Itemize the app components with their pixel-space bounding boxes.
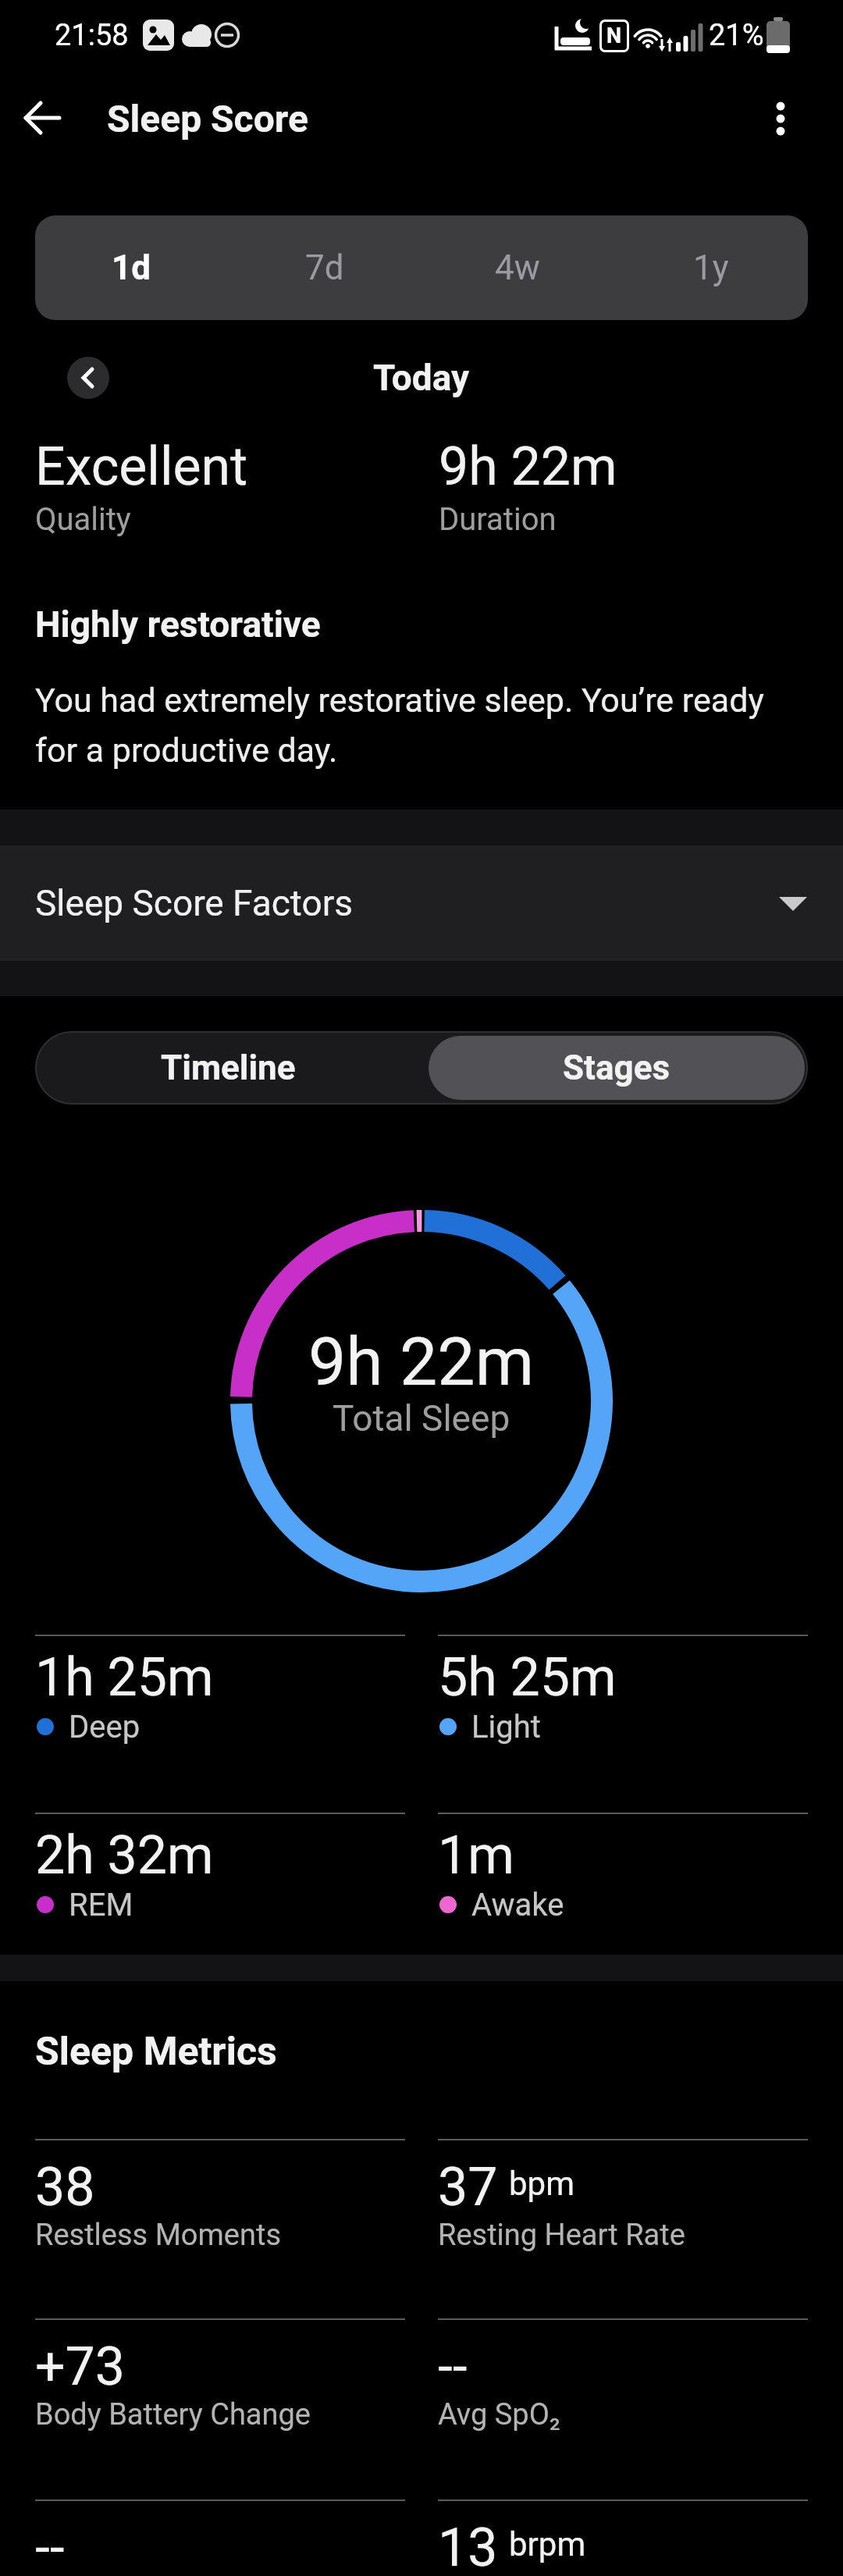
- staticText: Excellent: [35, 436, 248, 498]
- staticText: REM: [69, 1887, 133, 1923]
- staticText: 1y: [693, 247, 729, 288]
- staticText: Quality: [35, 501, 131, 538]
- staticText: Duration: [439, 501, 557, 538]
- staticText: 37: [438, 2156, 498, 2208]
- staticText: 1m: [438, 1824, 514, 1887]
- button[interactable]: 1d: [35, 215, 228, 320]
- staticText: Light: [471, 1709, 541, 1745]
- staticText: 1d: [112, 247, 151, 288]
- staticText: +73: [35, 2336, 126, 2387]
- staticText: N: [606, 23, 622, 48]
- staticText: Sleep Score Factors: [35, 882, 354, 924]
- staticText: Resting Heart Rate: [438, 2218, 685, 2253]
- button[interactable]: 1y: [614, 215, 808, 320]
- staticText: Deep: [69, 1709, 140, 1745]
- staticText: 38: [35, 2156, 95, 2208]
- staticText: Avg SpO₂: [438, 2397, 560, 2432]
- staticText: Highly restorative: [35, 603, 321, 646]
- button[interactable]: [67, 357, 109, 399]
- staticText: 2h 32m: [35, 1824, 214, 1887]
- staticText: 7d: [305, 247, 344, 288]
- staticText: Awake: [471, 1887, 564, 1923]
- staticText: --: [438, 2336, 468, 2387]
- staticText: 21:58: [55, 18, 129, 53]
- button[interactable]: 4w: [421, 215, 614, 320]
- button[interactable]: Sleep Score Factors: [0, 845, 843, 961]
- staticText: --: [35, 2517, 65, 2568]
- staticText: bpm: [509, 2165, 574, 2203]
- staticText: You had extremely restorative sleep. You…: [35, 681, 764, 770]
- staticText: 4w: [495, 247, 540, 288]
- button[interactable]: Timeline: [35, 1031, 421, 1105]
- button[interactable]: Stages: [429, 1036, 805, 1100]
- staticText: Stages: [563, 1048, 670, 1088]
- staticText: 9h 22m: [439, 436, 617, 498]
- button[interactable]: [753, 91, 808, 146]
- button[interactable]: 7d: [228, 215, 421, 320]
- button[interactable]: [16, 94, 70, 145]
- staticText: 1h 25m: [35, 1646, 214, 1709]
- staticText: 9h 22m: [308, 1322, 535, 1401]
- staticText: Sleep Metrics: [35, 2029, 277, 2075]
- staticText: Today: [373, 357, 470, 399]
- staticText: Timeline: [161, 1048, 296, 1088]
- staticText: Sleep Score: [107, 97, 308, 141]
- staticText: Body Battery Change: [35, 2397, 311, 2432]
- staticText: 5h 25m: [438, 1646, 617, 1709]
- staticText: brpm: [509, 2525, 586, 2564]
- staticText: 21%: [709, 18, 764, 53]
- staticText: Total Sleep: [333, 1397, 510, 1439]
- staticText: 13: [438, 2517, 498, 2568]
- staticText: Restless Moments: [35, 2218, 282, 2253]
